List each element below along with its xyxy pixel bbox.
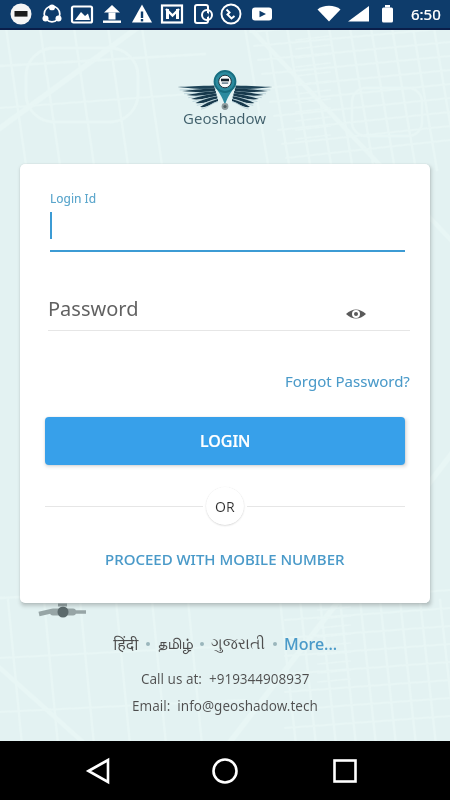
- button[interactable]: Password field: [48, 286, 410, 331]
- button[interactable]: LOGIN: [45, 417, 405, 465]
- button[interactable]: Recent apps: [321, 741, 369, 800]
- button[interactable]: Forgot Password?: [279, 365, 416, 397]
- staticText: OR: [215, 497, 235, 516]
- staticText: LOGIN: [200, 430, 251, 452]
- staticText: 6:50: [411, 4, 441, 24]
- staticText: Email: info@geoshadow.tech: [132, 697, 318, 715]
- staticText: Geoshadow: [183, 108, 267, 128]
- button[interactable]: தமிழ்: [157, 636, 193, 652]
- button[interactable]: Show password: [342, 300, 370, 328]
- button[interactable]: Home: [201, 741, 249, 800]
- button[interactable]: ગુજરાતી: [211, 636, 266, 652]
- button[interactable]: More...: [284, 633, 338, 655]
- staticText: Login Id: [50, 190, 97, 206]
- staticText: Call us at: +919344908937: [141, 670, 310, 688]
- button[interactable]: हिंदी: [113, 633, 139, 655]
- staticText: Password: [48, 295, 139, 322]
- button[interactable]: PROCEED WITH MOBILE NUMBER: [97, 541, 353, 577]
- button[interactable]: Back: [75, 741, 123, 800]
- staticText: Forgot Password?: [285, 371, 410, 391]
- button[interactable]: Login Id field: [48, 184, 408, 252]
